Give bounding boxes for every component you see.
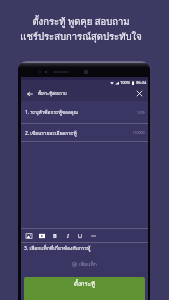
button[interactable]: Close xyxy=(134,88,145,99)
button[interactable]: U xyxy=(74,229,87,242)
button[interactable]: Strikethrough xyxy=(87,229,100,242)
staticText: ตั้งกระทู้ พูดคุย สอบถาม xyxy=(0,14,162,29)
staticText: เพิ่มแท็ก xyxy=(79,260,97,268)
staticText: 1/99 xyxy=(137,110,145,115)
button[interactable]: I xyxy=(61,229,74,242)
button[interactable]: B xyxy=(48,229,61,242)
staticText: 2. เขียนรายละเอียดกระทู้ xyxy=(25,129,77,137)
staticText: I xyxy=(67,232,69,239)
button[interactable]: 1. ระบุหัวข้อกระทู้ของคุณ xyxy=(21,101,148,123)
button[interactable]: 2. เขียนรายละเอียดกระทู้ xyxy=(21,124,148,141)
staticText: 3. เลือกแท็กที่เกี่ยวข้องกับกระทู้ xyxy=(24,244,91,252)
button[interactable]: Insert video xyxy=(35,229,48,242)
staticText: 06:34 xyxy=(136,80,147,85)
button[interactable]: Back xyxy=(24,88,35,99)
staticText: ตั้งกระทู้สอบถาม xyxy=(38,90,67,96)
staticText: U xyxy=(78,232,83,239)
button[interactable]: เพิ่มแท็ก xyxy=(68,259,101,269)
button[interactable]: Insert image xyxy=(22,229,35,242)
staticText: B xyxy=(53,232,57,239)
staticText: 1. ระบุหัวข้อกระทู้ของคุณ xyxy=(25,108,78,116)
staticText: แชร์ประสบการณ์สุดประทับใจ xyxy=(0,29,162,44)
staticText: /10000 xyxy=(133,130,145,135)
staticText: 100% xyxy=(120,80,131,85)
button[interactable]: ตั้งกระทู้ xyxy=(24,277,145,300)
staticText: ตั้งกระทู้ xyxy=(74,279,95,289)
